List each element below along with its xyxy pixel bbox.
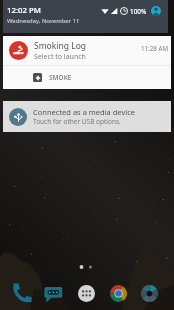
button[interactable]: Connected as a media device [3, 101, 171, 132]
button[interactable]: Messages [43, 283, 63, 303]
button[interactable]: Smoking Log [3, 36, 171, 89]
button[interactable]: Chrome [108, 283, 128, 303]
button[interactable]: User profile [151, 6, 161, 16]
button[interactable]: Camera [139, 283, 159, 303]
staticText: Connected as a media device [33, 107, 135, 117]
staticText: 12:02 PM [7, 5, 41, 16]
button[interactable]: Phone [12, 283, 32, 303]
button[interactable]: SMOKE [3, 66, 171, 89]
staticText: Smoking Log [34, 40, 87, 52]
staticText: 100% [130, 7, 147, 16]
staticText: Touch for other USB options. [33, 117, 121, 126]
staticText: Select to launch [34, 52, 86, 62]
staticText: Wednesday, November 11 [7, 17, 80, 25]
staticText: SMOKE [49, 73, 72, 82]
button[interactable]: All apps [76, 283, 96, 303]
staticText: 11:28 AM [141, 44, 168, 52]
